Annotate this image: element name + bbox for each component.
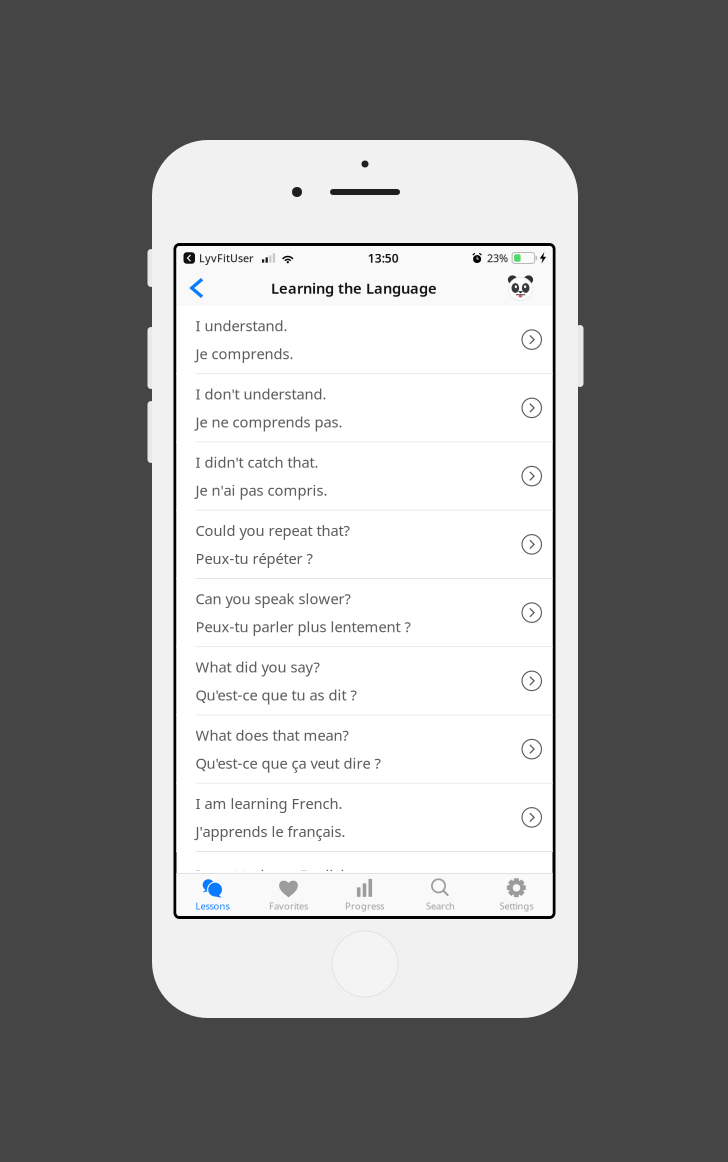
staticText: I don't understand. bbox=[195, 384, 326, 404]
button[interactable]: Favorites bbox=[250, 874, 326, 916]
button[interactable]: Lessons bbox=[174, 874, 250, 916]
staticText: Lessons bbox=[195, 900, 229, 912]
staticText: I didn't catch that. bbox=[195, 452, 318, 472]
staticText: I want to learn English. bbox=[195, 865, 353, 885]
button[interactable]: I don't understand. bbox=[176, 374, 552, 442]
button[interactable]: Progress bbox=[326, 874, 402, 916]
button[interactable]: I am learning French. bbox=[176, 784, 552, 852]
staticText: Je comprends. bbox=[195, 344, 293, 363]
button[interactable]: Profile bbox=[497, 270, 543, 306]
staticText: 13:50 bbox=[368, 250, 399, 266]
staticText: I understand. bbox=[195, 316, 287, 335]
staticText: Peux-tu parler plus lentement ? bbox=[195, 617, 410, 636]
staticText: Qu'est-ce que tu as dit ? bbox=[195, 685, 356, 705]
staticText: Search bbox=[426, 900, 455, 912]
staticText: Progress bbox=[345, 900, 384, 912]
button[interactable]: I understand. bbox=[176, 306, 552, 374]
staticText: Qu'est-ce que ça veut dire ? bbox=[195, 753, 380, 773]
staticText: What did you say? bbox=[195, 657, 319, 677]
staticText: Settings bbox=[499, 900, 533, 912]
button[interactable]: What did you say? bbox=[176, 647, 552, 715]
button[interactable]: Could you repeat that? bbox=[176, 511, 552, 579]
button[interactable]: Settings bbox=[478, 874, 554, 916]
staticText: Favorites bbox=[269, 900, 308, 912]
staticText: Je n'ai pas compris. bbox=[195, 480, 327, 500]
staticText: Learning the Language bbox=[271, 278, 437, 298]
button[interactable]: Search bbox=[402, 874, 478, 916]
button[interactable]: I didn't catch that. bbox=[176, 442, 552, 511]
staticText: Could you repeat that? bbox=[195, 521, 349, 540]
staticText: 23% bbox=[487, 251, 508, 265]
staticText: J'apprends le français. bbox=[195, 822, 345, 841]
button[interactable]: Can you speak slower? bbox=[176, 579, 552, 647]
button[interactable]: Back bbox=[182, 270, 210, 306]
staticText: What does that mean? bbox=[195, 725, 348, 745]
staticText: LyvFitUser bbox=[199, 251, 254, 265]
staticText: I am learning French. bbox=[195, 794, 342, 813]
staticText: Je ne comprends pas. bbox=[195, 412, 342, 432]
staticText: Can you speak slower? bbox=[195, 589, 350, 608]
button[interactable]: What does that mean? bbox=[176, 715, 552, 784]
staticText: Peux-tu répéter ? bbox=[195, 549, 312, 568]
